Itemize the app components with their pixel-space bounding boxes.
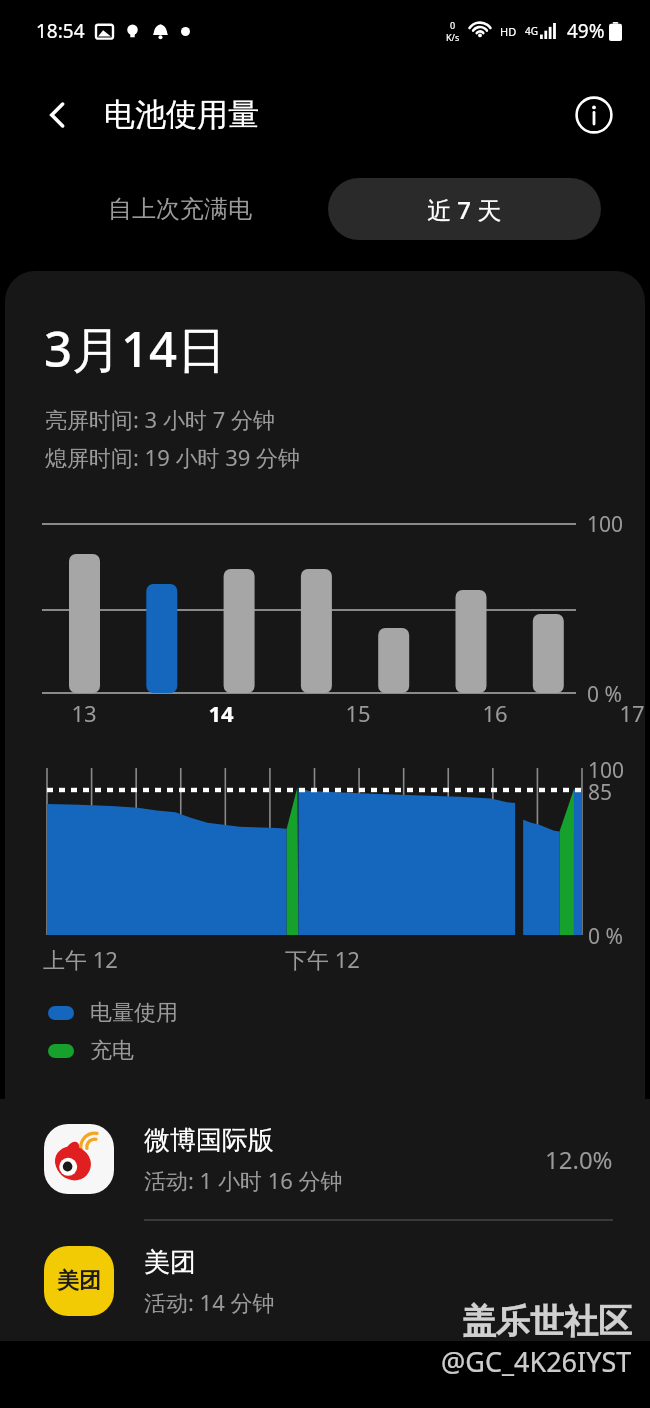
staticText: 14 (208, 698, 234, 728)
staticText: 熄屏时间: 19 小时 39 分钟 (45, 442, 301, 472)
staticText: 13 (71, 698, 97, 728)
staticText: 电量使用 (90, 999, 178, 1027)
staticText: K/s (446, 31, 460, 43)
staticText: 17 (619, 698, 645, 728)
staticText: 盖乐世社区 (462, 1300, 632, 1343)
staticText: 电池使用量 (104, 95, 259, 134)
staticText: 12.0% (545, 1143, 613, 1176)
staticText: 上午 12 (43, 944, 118, 974)
button[interactable]: 美团 (0, 1221, 650, 1341)
staticText: 活动: 14 分钟 (144, 1287, 275, 1317)
staticText: 美团 (144, 1246, 196, 1279)
button[interactable]: Information (566, 87, 622, 143)
staticText: @GC_4K26IYST (441, 1343, 632, 1380)
staticText: 100 (588, 756, 625, 785)
staticText: HD (500, 24, 517, 39)
staticText: 3月14日 (44, 315, 227, 382)
staticText: 0 % (588, 922, 623, 951)
staticText: 微博国际版 (144, 1124, 274, 1157)
button[interactable]: Back (30, 87, 86, 143)
staticText: 活动: 1 小时 16 分钟 (144, 1165, 343, 1195)
staticText: 100 (587, 510, 624, 539)
staticText: 美团 (57, 1267, 101, 1295)
button[interactable]: 微博国际版 (0, 1099, 650, 1219)
staticText: 充电 (90, 1037, 134, 1065)
staticText: 0 % (587, 680, 622, 709)
staticText: 自上次充满电 (108, 194, 252, 224)
staticText: 16 (482, 698, 508, 728)
staticText: 0 (450, 19, 456, 31)
button[interactable]: 近 7 天 (328, 178, 601, 240)
staticText: 亮屏时间: 3 小时 7 分钟 (45, 404, 275, 434)
staticText: 下午 12 (285, 944, 360, 974)
staticText: 18:54 (36, 18, 85, 44)
staticText: 15 (345, 698, 371, 728)
staticText: 49% (567, 18, 605, 44)
button[interactable]: 自上次充满电 (80, 180, 280, 238)
staticText: 4G (525, 24, 538, 38)
staticText: 近 7 天 (427, 193, 502, 226)
staticText: 85 (588, 778, 613, 807)
